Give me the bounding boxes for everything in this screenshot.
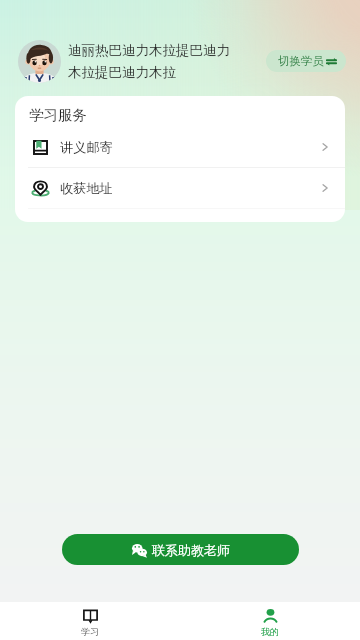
button[interactable]: 学习 — [0, 602, 180, 640]
staticText: 联系助教老师 — [152, 542, 230, 558]
staticText: 讲义邮寄 — [60, 139, 113, 156]
button[interactable]: 切换学员 — [266, 50, 346, 72]
staticText: 切换学员 — [278, 54, 324, 68]
button[interactable]: 我的 — [180, 602, 360, 640]
staticText: 迪丽热巴迪力木拉提巴迪力 木拉提巴迪力木拉 — [68, 42, 233, 81]
staticText: 学习 — [81, 626, 99, 637]
button[interactable]: 联系助教老师 — [62, 534, 299, 565]
button[interactable]: 收获地址 — [15, 168, 345, 208]
staticText: 学习服务 — [29, 106, 87, 124]
button[interactable]: 讲义邮寄 — [15, 127, 345, 167]
other: More — [319, 182, 331, 194]
staticText: 收获地址 — [60, 180, 113, 197]
staticText: 我的 — [261, 626, 279, 637]
other: More — [319, 141, 331, 153]
